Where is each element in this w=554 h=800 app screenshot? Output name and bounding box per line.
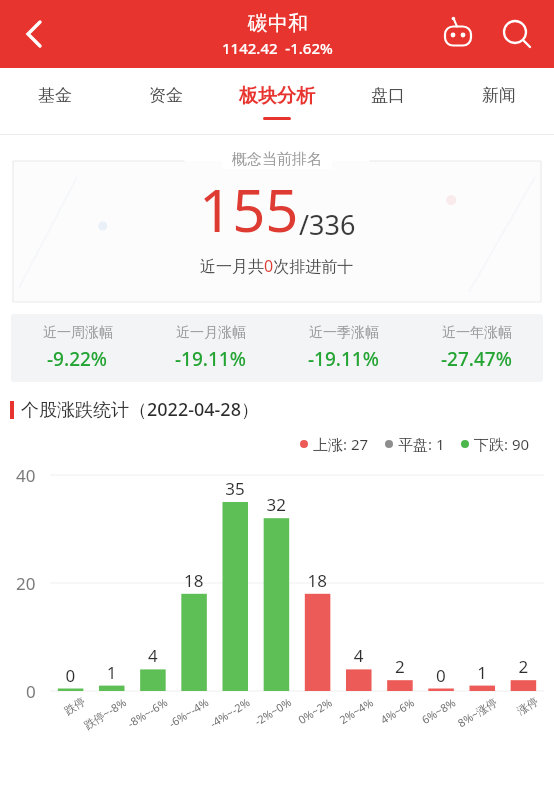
- staticText: 上涨: 27: [313, 434, 369, 454]
- button[interactable]: 板块分析: [221, 68, 332, 135]
- staticText: -27.47%: [441, 346, 512, 372]
- staticText: 基金: [38, 85, 72, 106]
- staticText: 近一季涨幅: [309, 324, 379, 342]
- staticText: 新闻: [482, 85, 516, 106]
- staticText: /336: [299, 206, 356, 243]
- button[interactable]: AI assistant: [436, 12, 480, 56]
- staticText: 资金: [149, 85, 183, 106]
- staticText: 下跌: 90: [474, 434, 530, 454]
- button[interactable]: 盘口: [332, 68, 443, 135]
- button[interactable]: Back: [8, 8, 60, 60]
- staticText: -9.22%: [47, 346, 108, 372]
- staticText: 盘口: [371, 85, 405, 106]
- button[interactable]: 资金: [110, 68, 221, 135]
- staticText: 近一月涨幅: [176, 324, 246, 342]
- button[interactable]: 基金: [0, 68, 110, 135]
- staticText: 板块分析: [239, 84, 315, 108]
- button[interactable]: 新闻: [443, 68, 554, 135]
- staticText: 平盘: 1: [398, 434, 445, 454]
- staticText: -19.11%: [308, 346, 379, 372]
- staticText: 近一周涨幅: [43, 324, 113, 342]
- button[interactable]: Search: [492, 10, 540, 58]
- staticText: 近一月共0次排进前十: [200, 255, 354, 277]
- staticText: 155: [199, 170, 299, 249]
- staticText: 概念当前排名: [232, 150, 322, 169]
- staticText: 碳中和: [248, 11, 308, 36]
- staticText: 近一年涨幅: [442, 324, 512, 342]
- staticText: 个股涨跌统计（2022-04-28）: [21, 397, 259, 422]
- staticText: -19.11%: [175, 346, 246, 372]
- staticText: 1142.42 -1.62%: [222, 38, 333, 58]
